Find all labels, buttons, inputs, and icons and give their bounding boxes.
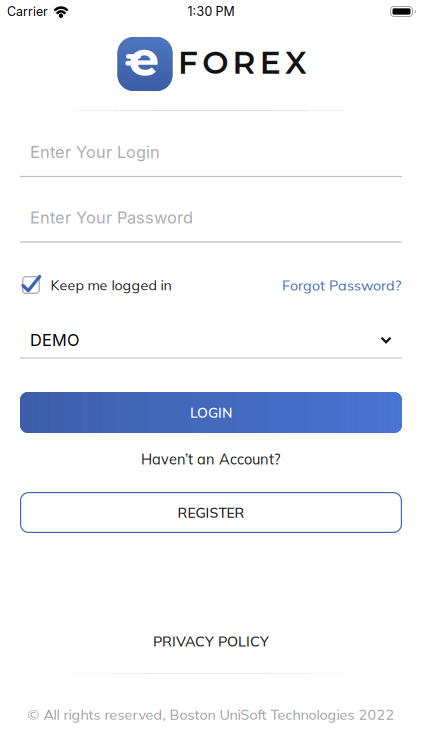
staticText: LOGIN — [190, 404, 232, 421]
button[interactable]: LOGIN — [20, 392, 402, 433]
staticText: DEMO — [30, 330, 79, 350]
staticText: 1:30 PM — [187, 4, 234, 19]
button[interactable]: DEMO — [20, 323, 402, 357]
button[interactable]: PRIVACY POLICY — [153, 632, 269, 650]
staticText: Enter Your Login — [30, 142, 160, 162]
staticText: © All rights reserved, Boston UniSoft Te… — [27, 706, 394, 723]
staticText: e — [129, 29, 159, 88]
button[interactable]: Keep me logged in — [21, 274, 171, 296]
staticText: Enter Your Password — [30, 208, 193, 227]
staticText: REGISTER — [177, 504, 244, 521]
staticText: Keep me logged in — [50, 276, 171, 294]
staticText: Haven’t an Account? — [141, 450, 281, 468]
staticText: Carrier — [7, 4, 48, 19]
button[interactable]: Forgot Password? — [282, 276, 401, 294]
staticText: Forgot Password? — [282, 276, 401, 294]
staticText: FOREX — [178, 43, 307, 81]
button[interactable]: REGISTER — [20, 492, 402, 533]
staticText: PRIVACY POLICY — [153, 632, 269, 650]
